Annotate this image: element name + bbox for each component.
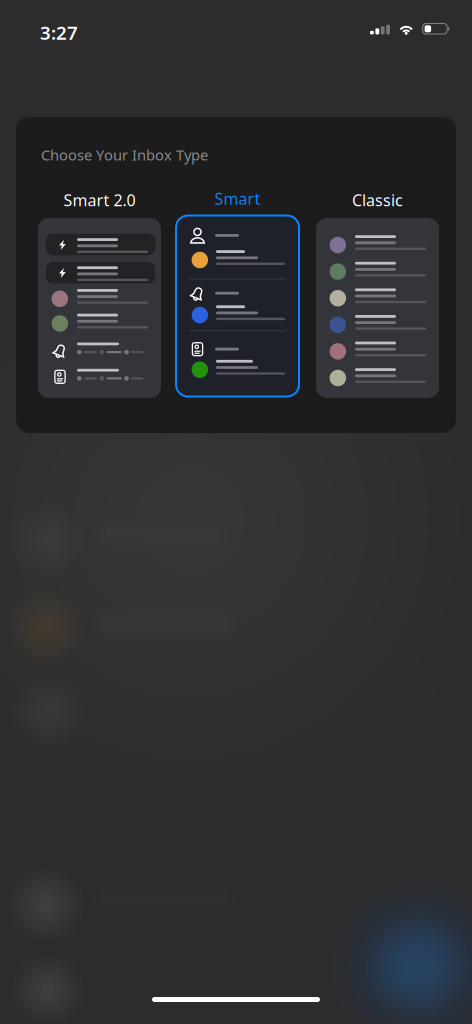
staticText: Smart xyxy=(214,188,260,209)
staticText: Smart 2.0 xyxy=(63,189,135,211)
button[interactable]: Smart 2.0 xyxy=(38,190,161,398)
button[interactable]: Smart xyxy=(176,188,299,396)
staticText: 3:27 xyxy=(40,20,78,45)
staticText: Choose Your Inbox Type xyxy=(41,145,208,164)
button[interactable]: Classic xyxy=(316,190,439,398)
staticText: Classic xyxy=(352,189,403,211)
